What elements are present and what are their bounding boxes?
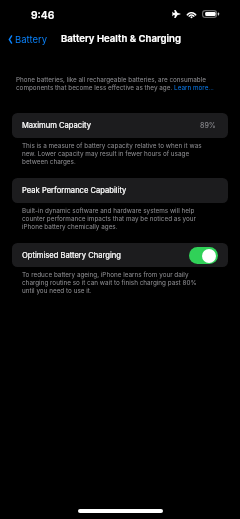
button[interactable]: Peak Performance Capability — [12, 178, 228, 203]
staticText: Battery — [15, 34, 48, 45]
staticText: 89% — [200, 121, 216, 130]
button[interactable]: Optimised Battery Charging — [189, 247, 218, 264]
staticText: Optimised Battery Charging — [22, 251, 121, 260]
staticText: Phone batteries, like all rechargeable b… — [16, 76, 224, 91]
staticText: 9:46 — [31, 9, 55, 21]
staticText: Maximum Capacity — [22, 121, 91, 130]
button[interactable]: Maximum Capacity — [12, 113, 228, 138]
staticText: To reduce battery ageing, iPhone learns … — [22, 271, 208, 295]
staticText: Peak Performance Capability — [22, 186, 127, 195]
staticText: Built-in dynamic software and hardware s… — [22, 207, 208, 231]
staticText: This is a measure of battery capacity re… — [22, 142, 208, 166]
button[interactable]: Optimised Battery Charging — [12, 243, 228, 267]
button[interactable]: Battery — [7, 32, 51, 46]
staticText: Battery Health & Charging — [61, 33, 181, 45]
